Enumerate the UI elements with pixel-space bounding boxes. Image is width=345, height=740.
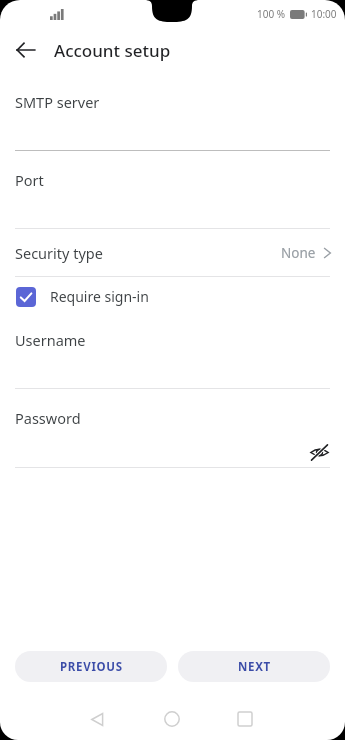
button[interactable]: Security type [0,229,345,276]
staticText: 10:00 [311,7,337,21]
staticText: Security type [15,243,103,263]
staticText: Username [15,330,86,350]
staticText: 100 % [257,7,286,21]
button[interactable]: Home [154,701,190,737]
button[interactable]: Require sign-in [0,277,345,316]
staticText: Require sign-in [50,287,149,306]
staticText: NEXT [238,659,271,675]
button[interactable]: Recent apps [227,701,263,737]
staticText: Password [15,408,81,428]
button[interactable]: NEXT [178,651,330,682]
button[interactable]: PREVIOUS [15,651,167,682]
button[interactable]: Back [79,701,115,737]
staticText: SMTP server [15,92,100,112]
staticText: Port [15,170,44,190]
staticText: PREVIOUS [60,659,123,675]
button[interactable]: Show password [303,436,335,468]
staticText: Account setup [54,39,171,62]
button[interactable]: Back [8,32,44,68]
staticText: None [281,244,316,262]
